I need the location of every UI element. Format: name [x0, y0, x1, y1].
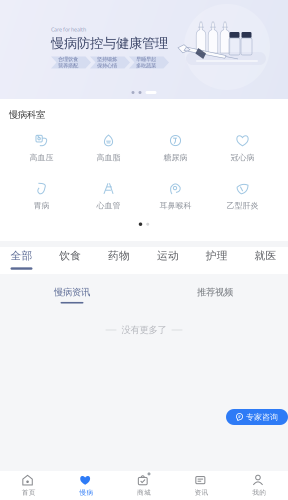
staticText: 冠心病	[230, 153, 254, 162]
button[interactable]: 护理	[192, 247, 241, 274]
button[interactable]: 运动	[143, 247, 192, 274]
button[interactable]: 专家咨询	[226, 409, 288, 425]
staticText: 药物	[108, 249, 130, 262]
staticText: 商城	[137, 488, 151, 497]
staticText: 慢病科室	[9, 109, 45, 120]
button[interactable]: 商城	[115, 471, 173, 500]
button[interactable]: 就医	[241, 247, 288, 274]
button[interactable]: 冠心病	[209, 138, 276, 166]
button[interactable]: 药物	[95, 247, 143, 274]
staticText: 心血管	[96, 201, 120, 210]
button[interactable]: 慢病资讯	[44, 286, 100, 304]
staticText: 慢病防控与健康管理	[51, 35, 168, 51]
staticText: 饮食	[59, 249, 81, 262]
staticText: 全部	[10, 249, 32, 262]
button[interactable]: 资讯	[173, 471, 230, 500]
button[interactable]: 心血管	[75, 186, 142, 214]
staticText: 慢病资讯	[54, 286, 90, 298]
staticText: 专家咨询	[246, 412, 278, 422]
button[interactable]: 首页	[0, 471, 58, 500]
button[interactable]: 胃病	[8, 186, 75, 214]
staticText: 高血压	[29, 153, 53, 162]
staticText: 我的	[252, 488, 266, 497]
staticText: 没有更多了	[121, 324, 166, 336]
staticText: Care for health	[51, 26, 86, 33]
staticText: 营养搭配	[58, 62, 78, 69]
staticText: 早睡早起	[136, 56, 156, 62]
staticText: 乙型肝炎	[226, 201, 258, 210]
staticText: 保持心情	[97, 62, 117, 69]
staticText: 多吃蔬菜	[136, 62, 156, 69]
staticText: 坚持锻炼	[97, 56, 117, 62]
staticText: 慢病	[79, 488, 93, 497]
staticText: 资讯	[195, 488, 209, 497]
button[interactable]: 高血脂	[75, 138, 142, 166]
staticText: 首页	[22, 488, 36, 497]
staticText: 护理	[206, 249, 228, 262]
staticText: 糖尿病	[163, 153, 187, 162]
staticText: 推荐视频	[197, 286, 233, 298]
button[interactable]: 糖尿病	[142, 138, 209, 166]
staticText: 胃病	[33, 201, 49, 210]
button[interactable]: 耳鼻喉科	[142, 186, 209, 214]
staticText: 合理饮食	[58, 56, 78, 62]
staticText: 耳鼻喉科	[159, 201, 191, 210]
staticText: 运动	[157, 249, 179, 262]
button[interactable]: 慢病	[58, 471, 115, 500]
button[interactable]: 全部	[0, 247, 46, 274]
button[interactable]: 推荐视频	[187, 286, 243, 304]
button[interactable]: 乙型肝炎	[209, 186, 276, 214]
button[interactable]: 我的	[230, 471, 288, 500]
button[interactable]: 饮食	[46, 247, 95, 274]
button[interactable]: 高血压	[8, 138, 75, 166]
staticText: 就医	[254, 249, 276, 262]
staticText: 高血脂	[96, 153, 120, 162]
